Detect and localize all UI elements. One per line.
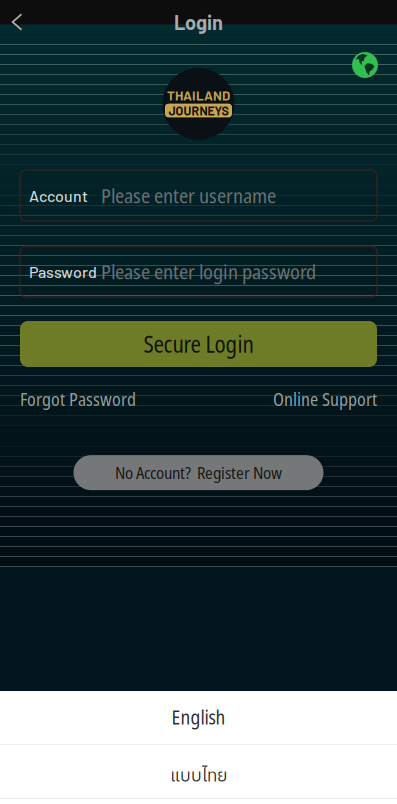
staticText: Secure Login xyxy=(143,329,253,359)
button[interactable]: No Account? Register Now xyxy=(73,455,323,490)
button[interactable]: Online Support xyxy=(273,387,377,411)
staticText: แบบไทย xyxy=(170,762,227,791)
button[interactable]: Language xyxy=(352,52,378,78)
button[interactable]: Back xyxy=(0,0,34,44)
staticText: Please enter login password xyxy=(101,258,316,285)
staticText: Please enter username xyxy=(101,182,276,209)
staticText: Online Support xyxy=(273,387,377,411)
button[interactable]: English xyxy=(0,690,397,744)
staticText: THAILAND xyxy=(167,87,230,103)
staticText: Password xyxy=(29,262,97,281)
staticText: Forgot Password xyxy=(20,387,136,411)
button[interactable]: Secure Login xyxy=(20,321,377,367)
staticText: No Account? Register Now xyxy=(115,461,282,484)
button[interactable]: แบบไทย xyxy=(0,745,397,798)
staticText: Login xyxy=(174,10,223,34)
staticText: English xyxy=(171,704,225,730)
staticText: JOURNEYS xyxy=(168,103,228,118)
button[interactable]: Forgot Password xyxy=(20,387,136,411)
staticText: Account xyxy=(29,186,88,205)
